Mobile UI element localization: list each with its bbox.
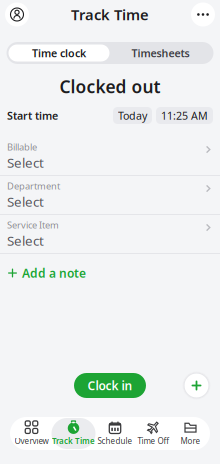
staticText: Time clock [32, 46, 86, 60]
button[interactable]: Track Time [51, 418, 95, 449]
staticText: Schedule [97, 436, 132, 446]
staticText: Select [7, 154, 44, 171]
staticText: Timesheets [131, 46, 189, 60]
button[interactable]: Overview [11, 418, 51, 449]
button[interactable]: Timesheets [109, 44, 211, 61]
staticText: Track Time [71, 5, 149, 24]
button[interactable]: Profile [5, 2, 29, 26]
button[interactable]: More options [191, 2, 215, 26]
button[interactable]: Service Item [0, 215, 220, 254]
staticText: 11:25 AM [161, 108, 208, 123]
button[interactable]: Add a note [0, 259, 220, 287]
button[interactable]: 11:25 AM [156, 107, 213, 124]
button[interactable]: More [172, 418, 208, 449]
button[interactable]: Time Off [134, 418, 172, 449]
staticText: Today [118, 108, 147, 123]
button[interactable]: Add [183, 372, 210, 399]
button[interactable]: Billable [0, 137, 220, 176]
staticText: Select [7, 193, 44, 210]
button[interactable]: Time clock [8, 44, 109, 61]
button[interactable]: Clock in [74, 373, 146, 398]
staticText: Clocked out [59, 75, 160, 98]
staticText: Select [7, 232, 44, 249]
staticText: Department [7, 180, 60, 192]
staticText: Track Time [52, 436, 95, 446]
staticText: Add a note [22, 265, 86, 281]
button[interactable]: Today [113, 107, 152, 124]
staticText: Start time [7, 108, 58, 123]
staticText: Service Item [7, 219, 59, 231]
button[interactable]: Department [0, 176, 220, 215]
staticText: Overview [14, 436, 48, 446]
staticText: Clock in [87, 377, 132, 393]
staticText: More [180, 436, 200, 446]
staticText: Billable [7, 141, 37, 153]
staticText: Time Off [137, 436, 169, 446]
button[interactable]: Schedule [95, 418, 134, 449]
